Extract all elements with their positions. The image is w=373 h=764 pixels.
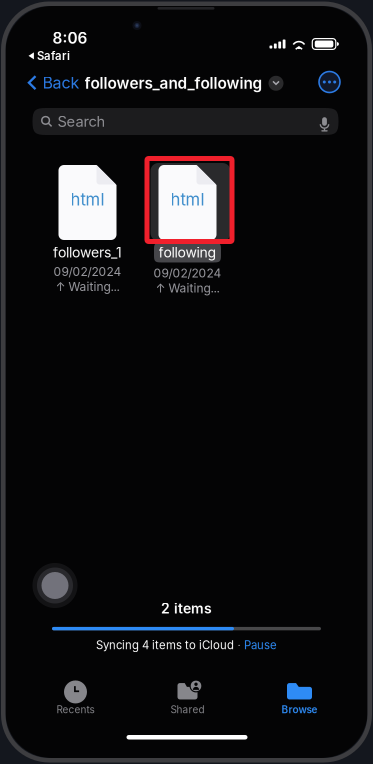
- staticText: Pause: [244, 638, 277, 652]
- staticText: Shared: [170, 703, 204, 716]
- staticText: 09/02/2024: [153, 266, 221, 280]
- staticText: Syncing 4 items to iCloud: [96, 638, 234, 652]
- staticText: 09/02/2024: [53, 264, 121, 279]
- staticText: 2 items: [161, 600, 212, 617]
- staticText: following: [158, 244, 216, 261]
- button[interactable]: Browse: [243, 677, 355, 719]
- staticText: followers_and_following: [84, 74, 262, 93]
- staticText: Safari: [37, 49, 70, 63]
- button[interactable]: Pause: [244, 638, 277, 652]
- staticText: html: [170, 189, 204, 210]
- staticText: html: [70, 189, 104, 210]
- button[interactable]: followers_and_following: [80, 69, 287, 98]
- staticText: 8:06: [52, 29, 87, 48]
- staticText: Browse: [281, 703, 317, 716]
- button[interactable]: Back: [21, 68, 86, 97]
- staticText: ↑ Waiting...: [155, 281, 219, 295]
- staticText: Recents: [56, 703, 94, 716]
- button[interactable]: Search: [32, 108, 338, 135]
- button[interactable]: Shared: [131, 677, 243, 719]
- staticText: followers_1: [53, 244, 122, 261]
- button[interactable]: More options: [313, 66, 345, 98]
- staticText: Search: [57, 113, 105, 130]
- button[interactable]: Recents: [19, 677, 131, 719]
- staticText: ·: [237, 638, 240, 652]
- staticText: Back: [43, 73, 80, 92]
- staticText: ↑ Waiting...: [55, 279, 119, 294]
